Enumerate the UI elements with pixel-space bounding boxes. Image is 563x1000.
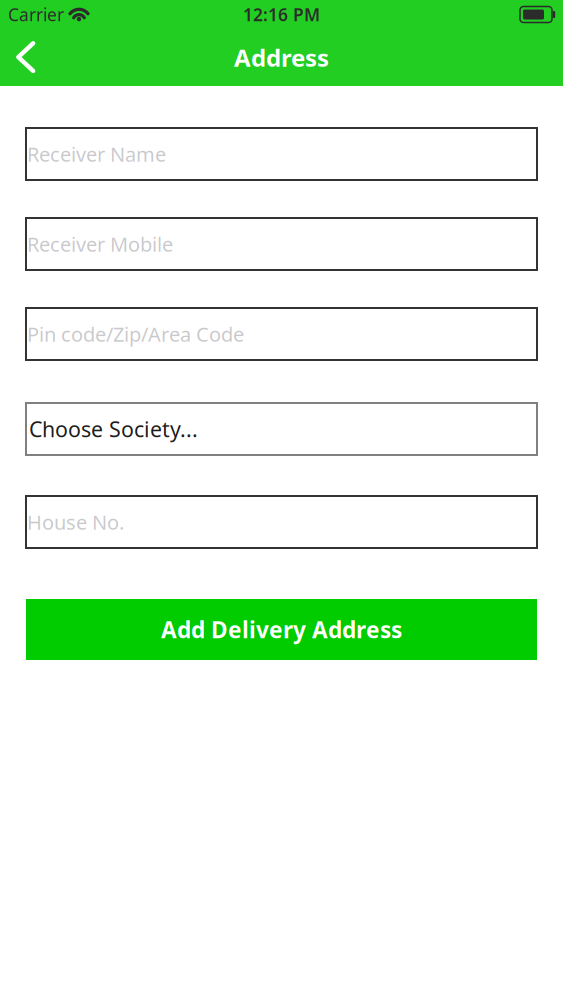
staticText: Receiver Name bbox=[27, 141, 166, 167]
staticText: Address bbox=[234, 42, 329, 73]
staticText: 12:16 PM bbox=[243, 3, 320, 26]
staticText: Pin code/Zip/Area Code bbox=[27, 321, 244, 347]
staticText: Add Delivery Address bbox=[161, 614, 402, 644]
button[interactable]: Add Delivery Address bbox=[26, 599, 537, 660]
staticText: House No. bbox=[27, 509, 124, 535]
button[interactable]: Back bbox=[0, 29, 50, 86]
button[interactable]: House No. bbox=[26, 496, 537, 548]
button[interactable]: Receiver Mobile bbox=[26, 218, 537, 270]
staticText: Choose Society... bbox=[29, 415, 198, 443]
button[interactable]: Receiver Name bbox=[26, 128, 537, 180]
button[interactable]: Choose Society... bbox=[26, 403, 537, 455]
button[interactable]: Pin code/Zip/Area Code bbox=[26, 308, 537, 360]
staticText: Receiver Mobile bbox=[27, 231, 173, 257]
staticText: Carrier bbox=[8, 3, 64, 26]
